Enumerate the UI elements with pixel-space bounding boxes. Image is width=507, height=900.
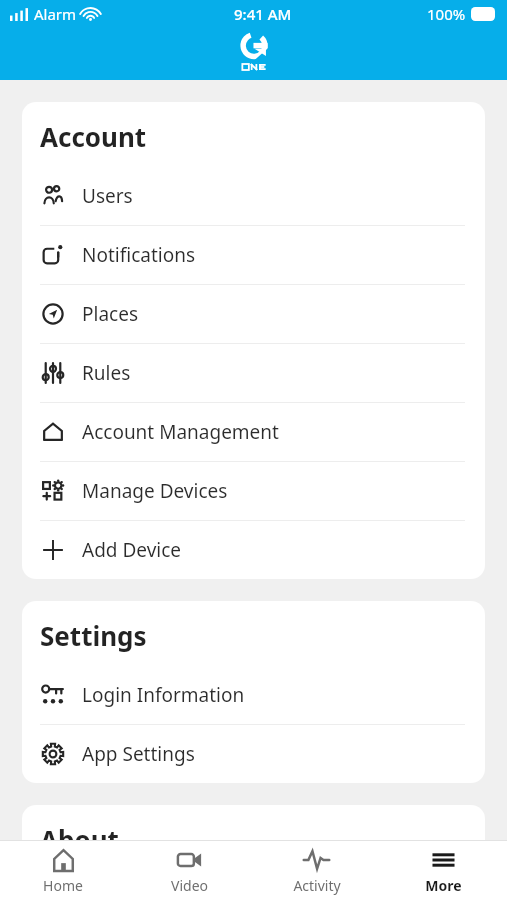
button[interactable]: Notifications <box>22 226 485 284</box>
button[interactable]: Add Device <box>22 521 485 579</box>
staticText: App Settings <box>82 741 195 767</box>
staticText: 9:41 AM <box>234 4 292 24</box>
button[interactable]: Rules <box>22 344 485 402</box>
staticText: Places <box>82 301 138 327</box>
button[interactable]: Video <box>126 841 253 900</box>
button[interactable]: Manage Devices <box>22 462 485 520</box>
staticText: More <box>425 876 462 895</box>
staticText: Rules <box>82 360 131 386</box>
staticText: Account <box>40 119 147 154</box>
staticText: Alarm <box>34 4 77 24</box>
button[interactable]: Places <box>22 285 485 343</box>
staticText: Login Information <box>82 682 245 708</box>
button[interactable]: Login Information <box>22 666 485 724</box>
button[interactable]: Account Management <box>22 403 485 461</box>
button[interactable]: More <box>380 841 507 900</box>
staticText: Account Management <box>82 419 279 445</box>
staticText: Video <box>171 876 208 895</box>
staticText: Manage Devices <box>82 478 228 504</box>
button[interactable]: Home <box>0 841 126 900</box>
staticText: About <box>40 822 119 840</box>
staticText: Notifications <box>82 242 196 268</box>
staticText: Settings <box>40 618 147 653</box>
button[interactable]: App Settings <box>22 725 485 783</box>
staticText: 100% <box>427 4 466 24</box>
staticText: Users <box>82 183 133 209</box>
staticText: Home <box>43 876 83 895</box>
staticText: Activity <box>293 876 341 895</box>
staticText: Add Device <box>82 537 182 563</box>
button[interactable]: Activity <box>253 841 380 900</box>
button[interactable]: Users <box>22 167 485 225</box>
